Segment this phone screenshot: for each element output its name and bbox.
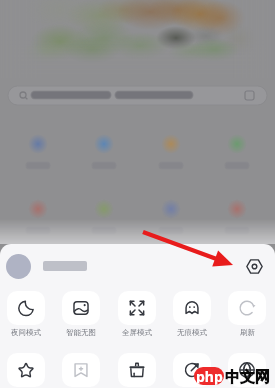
button[interactable]: 书签 [62, 353, 100, 387]
button[interactable]: 刷新 [228, 291, 266, 337]
button[interactable]: 分享 [173, 353, 211, 387]
button[interactable]: 清理 [118, 353, 156, 387]
staticText: 刷新 [240, 328, 255, 337]
button[interactable]: Settings [239, 251, 269, 281]
button[interactable]: 夜间模式 [7, 291, 45, 337]
staticText: php [196, 367, 223, 385]
button[interactable]: 无痕模式 [173, 291, 211, 337]
staticText: 无痕模式 [177, 328, 207, 337]
staticText: 全屏模式 [122, 328, 152, 337]
staticText: 中文网 [225, 368, 270, 387]
staticText: 夜间模式 [11, 328, 41, 337]
button[interactable]: 收藏 [7, 353, 45, 387]
button[interactable]: 智能无图 [62, 291, 100, 337]
button[interactable]: 翻译 [228, 353, 266, 387]
staticText: 智能无图 [66, 328, 96, 337]
button[interactable]: 全屏模式 [118, 291, 156, 337]
